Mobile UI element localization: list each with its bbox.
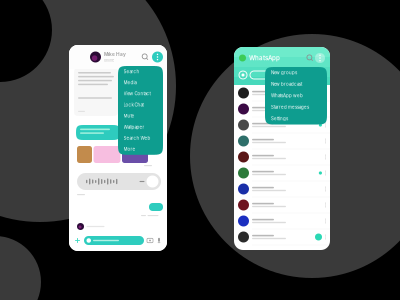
button[interactable] xyxy=(234,133,330,149)
staticText: Settings xyxy=(271,116,288,121)
button[interactable] xyxy=(234,149,330,165)
button[interactable] xyxy=(234,181,330,197)
button[interactable]: More options xyxy=(152,51,163,62)
button[interactable] xyxy=(250,71,273,79)
button[interactable]: Settings xyxy=(265,113,327,124)
button[interactable]: View Contact xyxy=(118,88,163,99)
button[interactable]: Mute xyxy=(118,110,163,121)
button[interactable]: New broadcast xyxy=(265,78,327,90)
button[interactable]: Search xyxy=(142,54,148,60)
button[interactable] xyxy=(234,213,330,229)
staticText: Mike Hay xyxy=(104,51,126,57)
staticText: Media xyxy=(123,80,136,85)
staticText: WhatsApp web xyxy=(271,93,303,98)
staticText: More xyxy=(123,147,135,152)
button[interactable]: Camera xyxy=(239,71,247,79)
button[interactable]: Attach xyxy=(74,237,81,244)
staticText: Search xyxy=(123,69,139,74)
button[interactable] xyxy=(234,165,330,181)
button[interactable]: Wallpaper xyxy=(118,121,163,133)
button[interactable]: WhatsApp web xyxy=(265,90,327,101)
button[interactable]: Lock Chat xyxy=(118,99,163,110)
staticText: Lock Chat xyxy=(123,102,143,107)
button[interactable] xyxy=(84,236,144,245)
staticText: New groups xyxy=(271,70,297,75)
button[interactable]: Voice message xyxy=(156,237,162,243)
button[interactable]: Starred messages xyxy=(265,101,327,113)
button[interactable] xyxy=(234,197,330,213)
button[interactable]: New groups xyxy=(265,67,327,78)
staticText: Wallpaper xyxy=(123,124,144,130)
button[interactable]: Search xyxy=(307,55,313,61)
button[interactable] xyxy=(234,117,330,133)
button[interactable]: More options xyxy=(315,53,325,63)
button[interactable] xyxy=(234,85,330,101)
button[interactable]: Search xyxy=(118,66,163,77)
button[interactable] xyxy=(234,229,330,245)
staticText: WhatsApp xyxy=(249,54,280,62)
staticText: Starred messages xyxy=(271,105,309,110)
staticText: Mute xyxy=(123,113,134,119)
button[interactable]: Camera xyxy=(147,237,153,243)
button[interactable]: More xyxy=(118,144,163,155)
staticText: Search Web xyxy=(123,135,150,141)
button[interactable] xyxy=(234,101,330,117)
button[interactable]: Search Web xyxy=(118,133,163,144)
staticText: online xyxy=(104,58,114,63)
button[interactable]: Media xyxy=(118,77,163,88)
staticText: New broadcast xyxy=(271,82,302,87)
staticText: View Contact xyxy=(123,91,150,96)
